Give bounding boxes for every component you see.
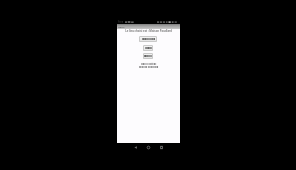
staticText: Harry <box>118 25 125 28</box>
button[interactable]: Cubes <box>143 45 153 51</box>
staticText: Harry Potter <box>141 62 157 65</box>
button[interactable]: Recent apps <box>157 143 165 151</box>
staticText: Harry Potter <box>141 61 157 64</box>
button[interactable]: Home <box>144 143 152 151</box>
button[interactable]: Valider <box>143 53 153 59</box>
button[interactable]: Back <box>131 143 139 151</box>
staticText: Maison Poudlard <box>139 66 159 69</box>
staticText: Le lieu choisi est : Maison Poudlard <box>125 29 172 33</box>
button[interactable]: Personnages <box>139 36 157 42</box>
staticText: Maison Poudlard <box>139 65 159 68</box>
staticText: Free <box>118 20 124 24</box>
button[interactable]: Harry <box>117 24 180 29</box>
